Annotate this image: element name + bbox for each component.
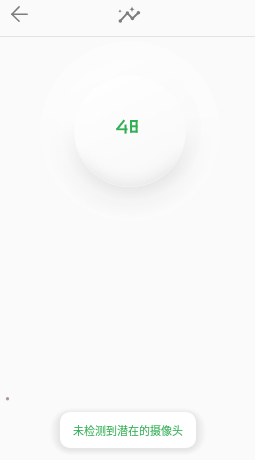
button[interactable]: Back xyxy=(2,0,36,27)
button[interactable]: 未检测到潜在的摄像头 xyxy=(60,412,196,448)
button[interactable]: Statistics xyxy=(112,2,147,29)
staticText: 未检测到潜在的摄像头 xyxy=(73,422,183,438)
